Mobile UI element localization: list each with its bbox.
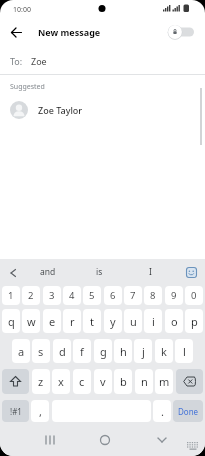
staticText: e	[49, 314, 56, 329]
button[interactable]: .	[153, 400, 171, 422]
button[interactable]: p	[185, 309, 203, 333]
button[interactable]: and	[34, 259, 62, 284]
button[interactable]: d	[53, 339, 71, 363]
staticText: 6	[110, 289, 116, 302]
staticText: a	[18, 344, 25, 359]
button[interactable]: e	[43, 309, 61, 333]
staticText: j	[142, 344, 145, 359]
button[interactable]: Zoe Taylor	[10, 92, 205, 128]
button[interactable]: s	[32, 339, 50, 363]
staticText: Done	[178, 406, 199, 417]
staticText: o	[171, 314, 178, 329]
staticText: Zoe Taylor	[38, 104, 83, 116]
button[interactable]: n	[135, 369, 153, 394]
staticText: h	[120, 344, 127, 359]
staticText: x	[58, 374, 64, 389]
staticText: p	[191, 314, 198, 329]
staticText: To:	[10, 55, 23, 67]
staticText: .	[161, 404, 164, 419]
staticText: d	[59, 344, 66, 359]
button[interactable]: !#1	[2, 400, 29, 422]
staticText: t	[90, 314, 94, 329]
button[interactable]: z	[32, 369, 50, 394]
staticText: 3	[49, 289, 55, 302]
button[interactable]: 6	[104, 286, 122, 305]
button[interactable]: t	[83, 309, 101, 333]
button[interactable]	[176, 369, 203, 394]
button[interactable]: x	[52, 369, 70, 394]
staticText: b	[120, 374, 127, 389]
staticText: I	[149, 266, 152, 278]
button[interactable]: f	[73, 339, 91, 363]
staticText: 7	[130, 289, 136, 302]
staticText: !#1	[10, 406, 22, 417]
staticText: New message	[38, 26, 101, 38]
button[interactable]: 5	[83, 286, 101, 305]
button[interactable]	[184, 265, 198, 279]
button[interactable]: 9	[165, 286, 183, 305]
button[interactable]	[137, 422, 205, 456]
button[interactable]: 4	[63, 286, 81, 305]
button[interactable]: 8	[144, 286, 162, 305]
button[interactable]	[6, 22, 26, 42]
button[interactable]: u	[124, 309, 142, 333]
button[interactable]: h	[114, 339, 132, 363]
button[interactable]: w	[22, 309, 40, 333]
button[interactable]: l	[175, 339, 193, 363]
staticText: i	[152, 314, 155, 329]
button[interactable]: c	[73, 369, 91, 394]
button[interactable]: a	[12, 339, 30, 363]
staticText: y	[110, 314, 116, 329]
button[interactable]: 7	[124, 286, 142, 305]
staticText: f	[80, 344, 84, 359]
staticText: v	[100, 374, 106, 389]
staticText: is	[96, 266, 103, 278]
staticText: z	[38, 374, 44, 389]
button[interactable]: Done	[173, 400, 203, 422]
staticText: q	[8, 314, 15, 329]
staticText: 5	[89, 289, 95, 302]
button[interactable]: j	[134, 339, 152, 363]
button[interactable]: To:	[10, 47, 205, 74]
button[interactable]: i	[144, 309, 162, 333]
button[interactable]: 3	[43, 286, 61, 305]
button[interactable]: o	[165, 309, 183, 333]
staticText: c	[79, 374, 85, 389]
button[interactable]: r	[63, 309, 81, 333]
button[interactable]	[69, 422, 137, 456]
staticText: ,	[39, 404, 42, 419]
button[interactable]: y	[104, 309, 122, 333]
button[interactable]: k	[155, 339, 173, 363]
staticText: 10:00	[13, 5, 31, 15]
button[interactable]	[2, 369, 29, 394]
staticText: 2	[28, 289, 34, 302]
button[interactable]: g	[94, 339, 112, 363]
staticText: Suggested	[10, 82, 45, 92]
button[interactable]	[6, 265, 20, 279]
button[interactable]: ,	[31, 400, 49, 422]
staticText: u	[130, 314, 137, 329]
button[interactable]: I	[140, 259, 160, 284]
staticText: w	[27, 314, 36, 329]
button[interactable]: b	[114, 369, 132, 394]
staticText: s	[38, 344, 44, 359]
button[interactable]: 1	[2, 286, 20, 305]
button[interactable]: v	[94, 369, 112, 394]
button[interactable]: m	[155, 369, 173, 394]
button[interactable]: q	[2, 309, 20, 333]
button[interactable]: 2	[22, 286, 40, 305]
staticText: k	[161, 344, 167, 359]
staticText: 9	[171, 289, 177, 302]
button[interactable]: 0	[185, 286, 203, 305]
staticText: g	[100, 344, 107, 359]
staticText: 0	[191, 289, 197, 302]
staticText: Zoe	[31, 55, 47, 67]
button[interactable]: is	[86, 259, 112, 284]
staticText: r	[70, 314, 75, 329]
button[interactable]	[167, 23, 195, 41]
button[interactable]	[0, 422, 69, 456]
staticText: n	[141, 374, 148, 389]
staticText: and	[40, 266, 56, 278]
staticText: 4	[69, 289, 75, 302]
